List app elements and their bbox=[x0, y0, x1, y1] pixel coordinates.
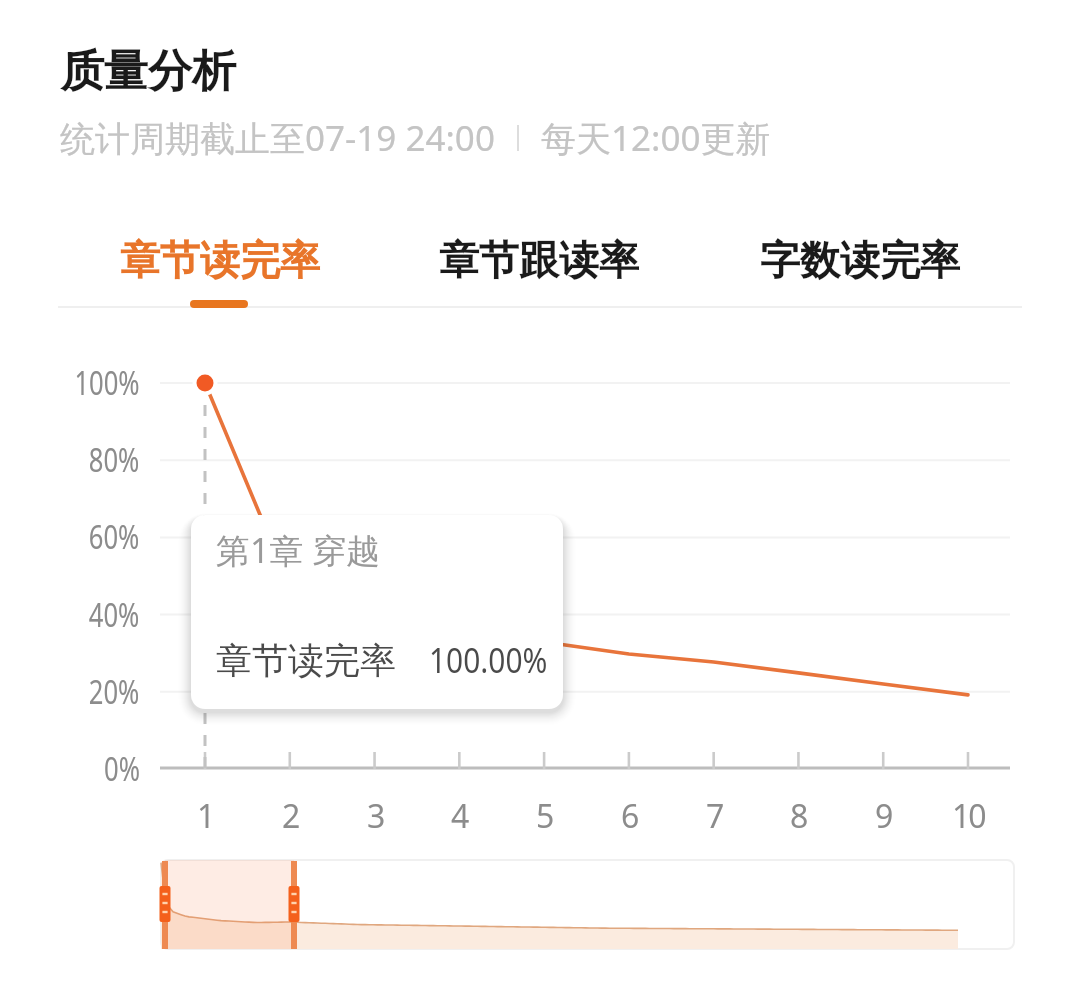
staticText: 100.00% bbox=[429, 637, 548, 683]
button[interactable]: 字数读完率 bbox=[720, 235, 1000, 323]
staticText: 章节跟读率 bbox=[439, 235, 639, 285]
staticText: 9 bbox=[875, 794, 892, 838]
staticText: 3 bbox=[367, 794, 384, 838]
staticText: 质量分析 bbox=[60, 44, 236, 99]
staticText: 100% bbox=[74, 361, 140, 405]
staticText: 5 bbox=[536, 794, 553, 838]
staticText: 40% bbox=[89, 593, 140, 637]
staticText: 6 bbox=[621, 794, 638, 838]
staticText: 统计周期截止至07-19 24:00 bbox=[60, 114, 495, 162]
staticText: 字数读完率 bbox=[760, 235, 960, 285]
button[interactable]: 第1章 穿越 bbox=[191, 515, 563, 709]
button[interactable]: Chapter range overview bbox=[160, 859, 1015, 950]
staticText: 2 bbox=[282, 794, 299, 838]
staticText: 0% bbox=[104, 747, 140, 791]
staticText: 10 bbox=[952, 794, 985, 838]
button[interactable]: 章节跟读率 bbox=[399, 235, 679, 323]
button[interactable]: 章节读完率 bbox=[80, 235, 360, 323]
staticText: 8 bbox=[790, 794, 807, 838]
staticText: 20% bbox=[89, 670, 140, 714]
staticText: 1 bbox=[197, 794, 214, 838]
button[interactable]: Range start handle bbox=[145, 860, 185, 949]
staticText: 4 bbox=[451, 794, 468, 838]
staticText: 7 bbox=[706, 794, 723, 838]
staticText: 60% bbox=[89, 515, 140, 559]
staticText: 章节读完率 bbox=[120, 235, 320, 285]
staticText: 第1章 穿越 bbox=[216, 527, 381, 573]
staticText: 80% bbox=[89, 438, 140, 482]
staticText: 每天12:00更新 bbox=[541, 114, 771, 162]
button[interactable]: Range end handle bbox=[274, 860, 314, 949]
staticText: 章节读完率 bbox=[216, 638, 396, 683]
